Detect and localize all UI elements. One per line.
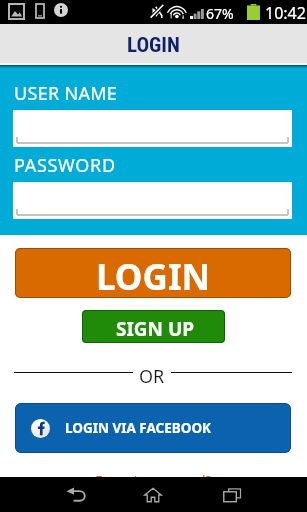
button[interactable]: Recent apps: [206, 477, 258, 512]
staticText: 67%: [206, 4, 234, 23]
staticText: LOGIN: [96, 253, 210, 298]
button[interactable]: LOGIN VIA FACEBOOK: [15, 403, 291, 453]
button[interactable]: Back: [50, 477, 102, 512]
button[interactable]: [13, 182, 292, 219]
button[interactable]: [13, 110, 292, 147]
staticText: SIGN UP: [116, 316, 195, 342]
staticText: USER NAME: [14, 81, 118, 106]
button[interactable]: SIGN UP: [82, 310, 225, 343]
staticText: LOGIN: [127, 33, 180, 58]
button[interactable]: Forgot password?: [95, 471, 212, 490]
staticText: 10:42: [265, 2, 306, 24]
button[interactable]: LOGIN: [15, 248, 291, 298]
button[interactable]: Home: [127, 477, 179, 512]
staticText: PASSWORD: [14, 153, 116, 178]
staticText: LOGIN VIA FACEBOOK: [65, 419, 212, 437]
staticText: OR: [139, 364, 165, 384]
